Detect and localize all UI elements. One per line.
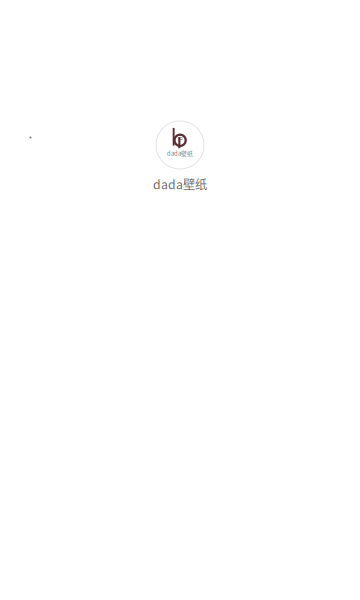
button[interactable]: dada壁纸 xyxy=(153,121,207,193)
staticText: dada壁纸 xyxy=(167,149,193,157)
staticText: dada壁纸 xyxy=(153,175,207,193)
